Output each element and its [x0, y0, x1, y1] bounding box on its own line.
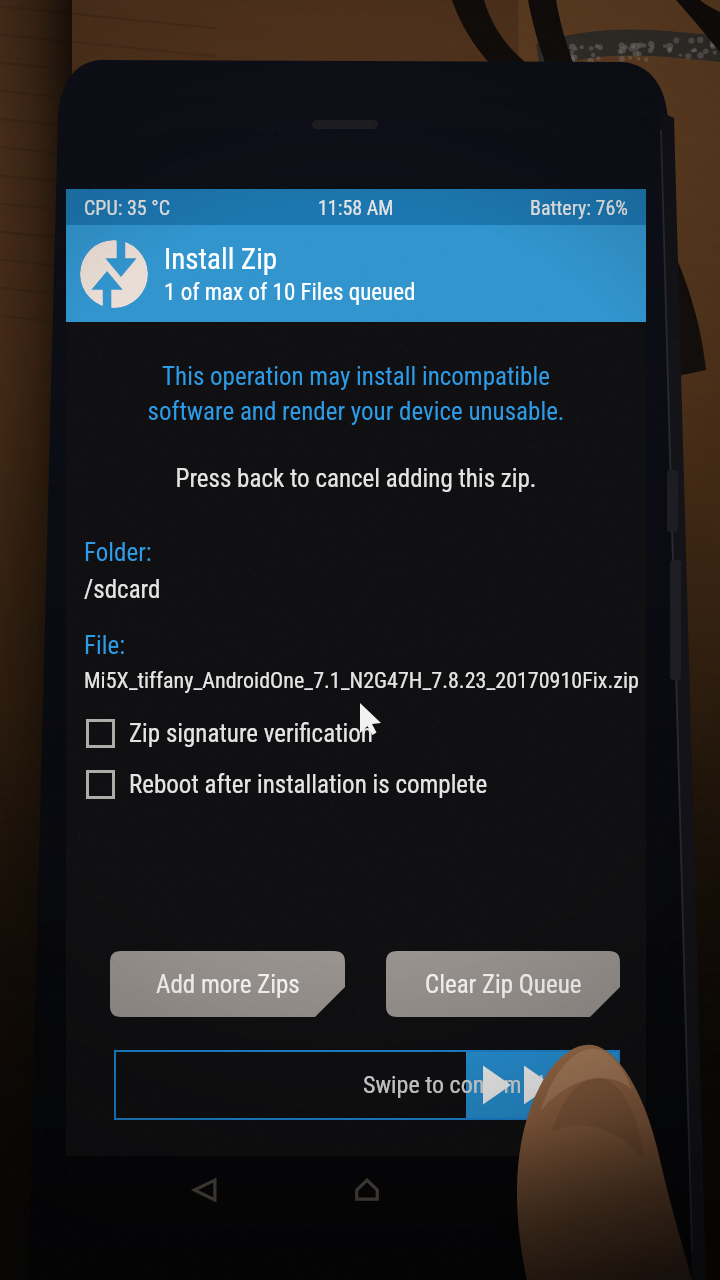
staticText: Folder:: [84, 538, 152, 567]
staticText: /sdcard: [84, 575, 161, 604]
staticText: Install Zip: [164, 242, 278, 276]
button[interactable]: Swipe to confirm Flash: [114, 1050, 620, 1120]
staticText: Zip signature verification: [129, 719, 373, 748]
staticText: 11:58 AM: [318, 196, 394, 219]
staticText: This operation may install incompatible: [66, 362, 646, 391]
button[interactable]: Zip signature verification: [86, 719, 646, 748]
staticText: Mi5X_tiffany_AndroidOne_7.1_N2G47H_7.8.2…: [84, 668, 639, 694]
button[interactable]: Clear Zip Queue: [386, 951, 620, 1017]
staticText: Swipe to confirm Flash: [363, 1071, 579, 1099]
staticText: Press back to cancel adding this zip.: [66, 464, 646, 493]
staticText: software and render your device unusable…: [66, 397, 646, 426]
staticText: CPU: 35 °C: [84, 196, 171, 219]
button[interactable]: Home: [348, 1171, 386, 1209]
staticText: Clear Zip Queue: [425, 970, 582, 999]
staticText: Add more Zips: [156, 970, 300, 999]
button[interactable]: Install Zip: [66, 225, 646, 322]
button[interactable]: Back: [186, 1171, 224, 1209]
staticText: Battery: 76%: [530, 196, 628, 219]
staticText: Reboot after installation is complete: [129, 770, 488, 799]
button[interactable]: Reboot after installation is complete: [86, 770, 646, 799]
staticText: File:: [84, 631, 126, 660]
staticText: 1 of max of 10 Files queued: [164, 279, 416, 306]
button[interactable]: Add more Zips: [110, 951, 345, 1017]
